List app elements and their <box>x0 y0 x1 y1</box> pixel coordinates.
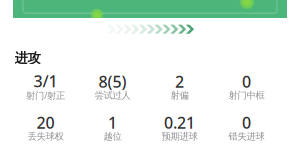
button[interactable]: 0.21 <box>146 114 213 139</box>
staticText: 尝试过人 <box>94 90 130 101</box>
button[interactable]: 8(5) <box>79 73 146 98</box>
staticText: 错失进球 <box>228 131 264 142</box>
button[interactable]: 3/1 <box>12 73 79 98</box>
staticText: 0.21 <box>164 112 195 133</box>
staticText: 3/1 <box>33 70 57 92</box>
staticText: 1 <box>108 112 117 133</box>
staticText: 8(5) <box>98 71 126 92</box>
button[interactable]: 20 <box>12 114 79 139</box>
button[interactable]: 2 <box>146 73 213 98</box>
staticText: 2 <box>175 71 184 92</box>
button[interactable]: 0 <box>213 114 280 139</box>
button[interactable]: 0 <box>213 73 280 98</box>
staticText: 进攻 <box>14 50 40 66</box>
staticText: 0 <box>242 71 251 92</box>
staticText: 丢失球权 <box>27 131 63 142</box>
staticText: 预期进球 <box>161 131 197 142</box>
staticText: 0 <box>242 112 251 133</box>
staticText: 射门/射正 <box>26 89 65 102</box>
staticText: 射门中框 <box>228 90 264 101</box>
button[interactable]: Shot map <box>13 0 287 18</box>
staticText: 射偏 <box>170 90 188 101</box>
staticText: 越位 <box>103 131 121 142</box>
staticText: 20 <box>36 112 54 133</box>
button[interactable]: 1 <box>79 114 146 139</box>
